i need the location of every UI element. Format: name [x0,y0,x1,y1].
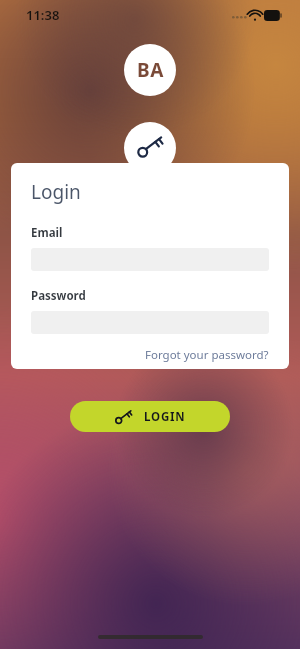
staticText: Password [31,288,86,304]
button[interactable]: Secure login [124,122,176,174]
staticText: LOGIN [144,409,186,425]
staticText: Login [31,179,81,205]
button[interactable]: LOGIN [70,401,230,432]
button[interactable]: Brand logo [124,44,176,96]
staticText: Email [31,225,63,241]
staticText: 11:38 [26,6,60,24]
staticText: BA [137,57,164,83]
button[interactable]: Forgot your password? [145,345,269,365]
